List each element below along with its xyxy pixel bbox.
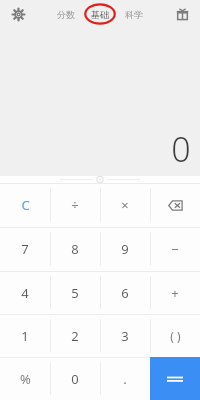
button[interactable]: % [0, 357, 50, 400]
button[interactable]: ÷ [50, 183, 100, 227]
staticText: − [171, 240, 179, 258]
button[interactable]: 6 [100, 271, 150, 314]
staticText: ÷ [71, 196, 79, 214]
staticText: 科学 [125, 9, 143, 20]
staticText: 4 [21, 284, 29, 302]
staticText: 0 [71, 370, 79, 388]
staticText: 6 [121, 284, 129, 302]
button[interactable]: Backspace [150, 183, 200, 227]
staticText: + [171, 284, 179, 302]
staticText: C [21, 196, 30, 214]
staticText: 8 [71, 240, 79, 258]
button[interactable]: 分数 [55, 7, 77, 22]
button[interactable]: . [100, 357, 150, 400]
button[interactable] [150, 357, 200, 400]
staticText: 0 [171, 126, 191, 172]
staticText: 分数 [57, 9, 75, 20]
button[interactable]: 2 [50, 314, 100, 357]
button[interactable]: Settings [8, 4, 28, 24]
staticText: 1 [21, 327, 29, 345]
button[interactable]: 3 [100, 314, 150, 357]
button[interactable]: 7 [0, 227, 50, 271]
staticText: 2 [71, 327, 79, 345]
staticText: 3 [121, 327, 129, 345]
staticText: × [121, 196, 129, 214]
staticText: ( ) [170, 328, 181, 344]
button[interactable]: Gift [172, 4, 192, 24]
button[interactable]: 科学 [123, 7, 145, 22]
button[interactable]: + [150, 271, 200, 314]
button[interactable]: 8 [50, 227, 100, 271]
button[interactable]: ( ) [150, 314, 200, 357]
button[interactable]: 5 [50, 271, 100, 314]
button[interactable]: × [100, 183, 150, 227]
button[interactable]: C [0, 183, 50, 227]
button[interactable]: 0 [50, 357, 100, 400]
staticText: % [20, 370, 31, 388]
staticText: . [123, 370, 127, 388]
staticText: 基础 [91, 9, 109, 20]
staticText: 9 [121, 240, 129, 258]
button[interactable]: − [150, 227, 200, 271]
button[interactable]: 基础 [89, 7, 111, 22]
button[interactable]: 9 [100, 227, 150, 271]
button[interactable]: 1 [0, 314, 50, 357]
staticText: 5 [71, 284, 79, 302]
staticText: 7 [21, 240, 29, 258]
button[interactable]: 4 [0, 271, 50, 314]
